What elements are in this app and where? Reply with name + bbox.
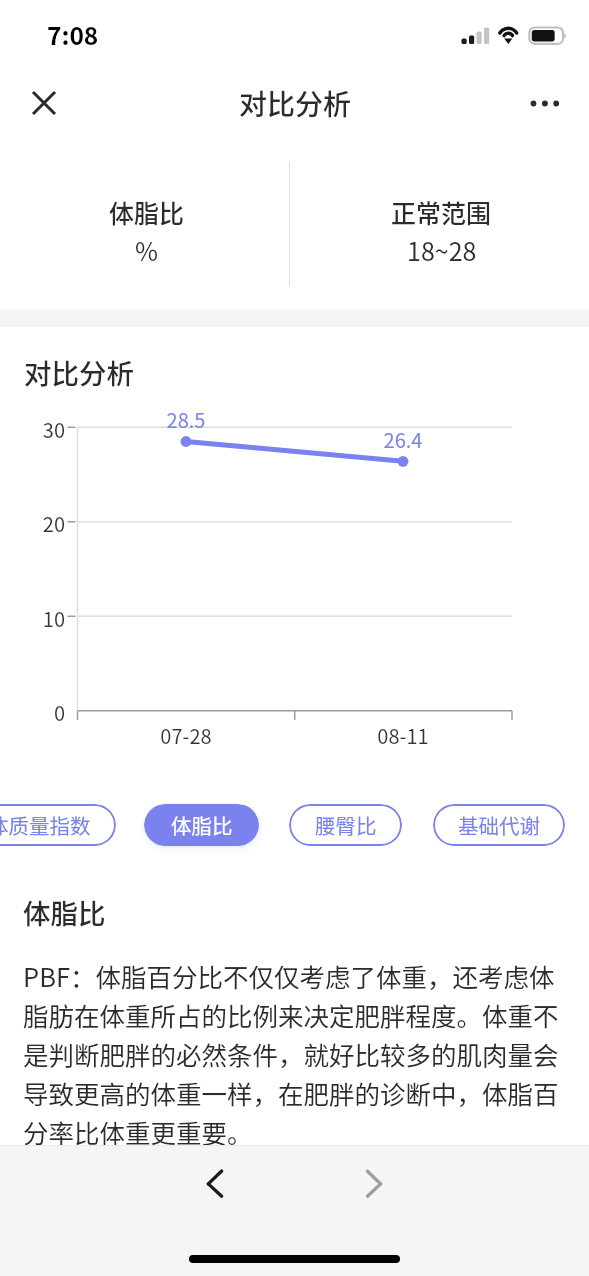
button[interactable]: More options [520,79,568,127]
button[interactable]: 体质量指数 [0,804,116,846]
staticText: 08-11 [353,721,453,750]
staticText: 26.4 [353,425,453,454]
staticText: 体脂比 [109,194,185,230]
button[interactable]: 基础代谢 [433,804,565,846]
staticText: 30 [10,415,65,444]
staticText: 28.5 [136,405,236,434]
staticText: 基础代谢 [458,810,540,840]
staticText: 7:08 [47,17,99,52]
staticText: 体质量指数 [0,810,91,840]
staticText: 对比分析 [24,352,134,392]
button[interactable]: Forward [350,1160,398,1208]
staticText: 20 [10,509,65,538]
staticText: 体脂比 [23,892,106,932]
staticText: 腰臀比 [315,810,377,840]
staticText: % [135,232,159,268]
staticText: 正常范围 [391,194,492,230]
staticText: 0 [10,698,65,727]
button[interactable]: 腰臀比 [289,804,402,846]
button[interactable]: 体脂比 [144,804,259,846]
button[interactable]: Back [192,1160,240,1208]
staticText: 体脂比 [171,810,233,840]
staticText: PBF：体脂百分比不仅仅考虑了体重，还考虑体脂肪在体重所占的比例来决定肥胖程度。… [23,957,568,1150]
staticText: 07-28 [136,721,236,750]
staticText: 对比分析 [239,83,352,124]
staticText: 10 [10,604,65,633]
button[interactable]: Close [20,79,68,127]
staticText: 18~28 [407,232,477,268]
